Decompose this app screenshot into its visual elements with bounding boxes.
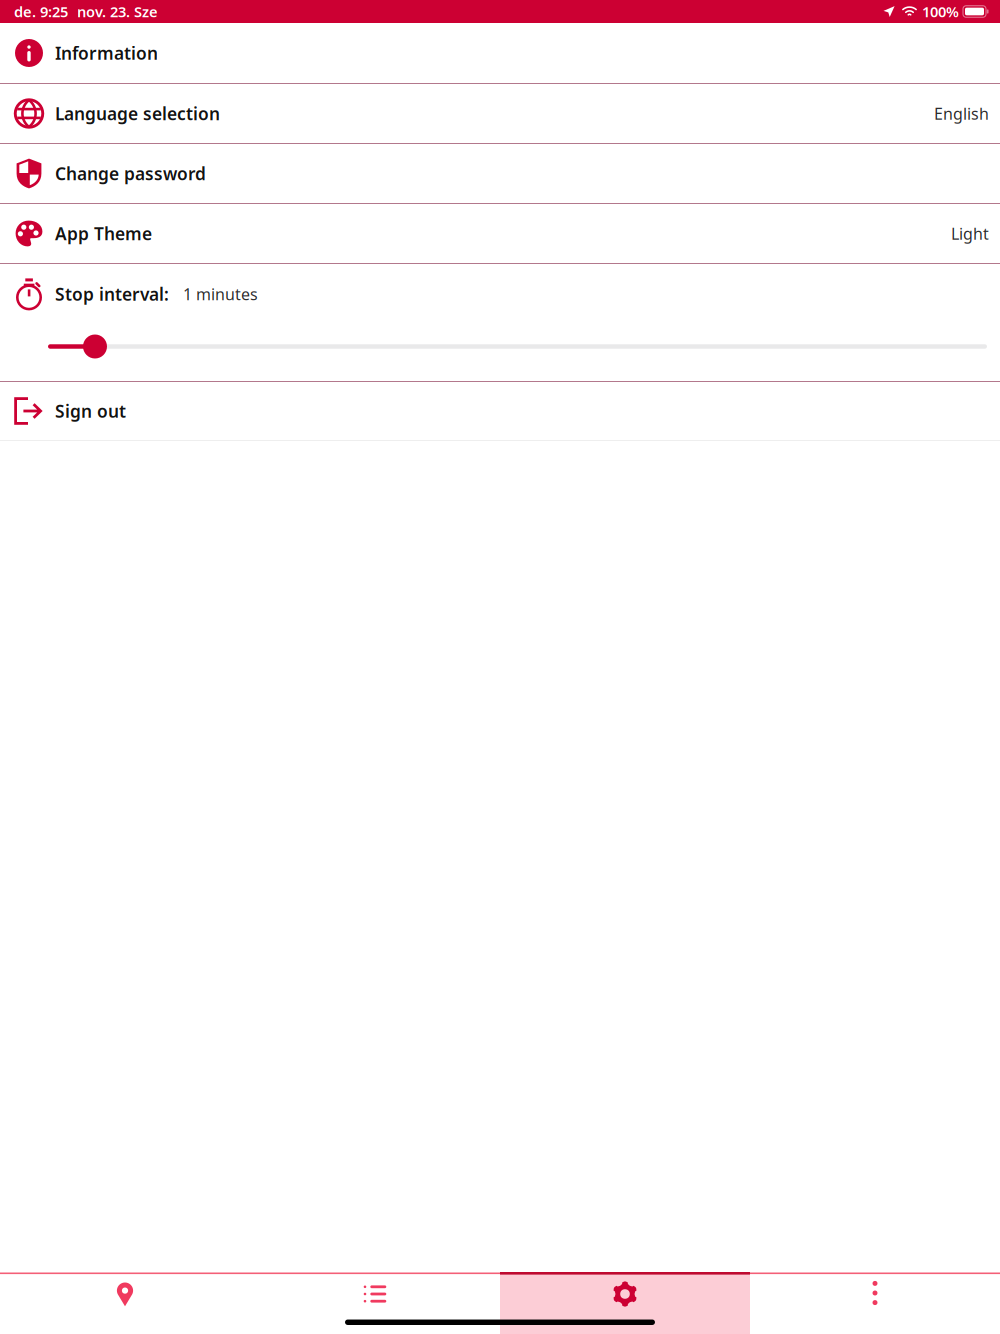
staticText: nov. 23. Sze xyxy=(77,2,158,21)
button[interactable]: Map xyxy=(0,1272,250,1334)
staticText: Change password xyxy=(55,162,206,185)
button[interactable]: Information xyxy=(0,23,1000,83)
button[interactable]: More xyxy=(750,1272,1000,1334)
button[interactable]: Sign out xyxy=(0,382,1000,440)
staticText: Light xyxy=(951,223,989,244)
button[interactable]: Settings xyxy=(500,1272,750,1334)
staticText: 1 minutes xyxy=(183,283,258,305)
staticText: de. 9:25 xyxy=(14,2,68,21)
button[interactable]: Language selection xyxy=(0,84,1000,143)
staticText: English xyxy=(934,103,989,124)
staticText: Stop interval: xyxy=(55,282,169,305)
staticText: 100% xyxy=(922,2,959,21)
button[interactable]: App Theme xyxy=(0,204,1000,263)
button[interactable]: Change password xyxy=(0,144,1000,203)
staticText: Language selection xyxy=(55,102,220,125)
staticText: App Theme xyxy=(55,222,152,245)
button[interactable]: List xyxy=(250,1272,500,1334)
staticText: Information xyxy=(55,41,158,64)
staticText: Sign out xyxy=(55,399,126,422)
